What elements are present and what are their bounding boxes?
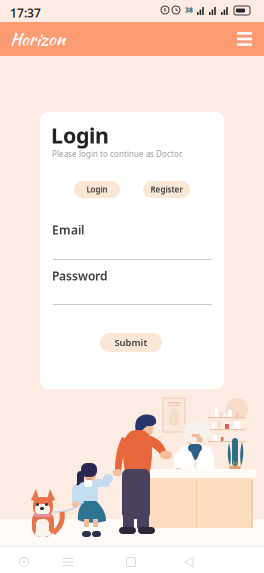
button[interactable]: Assistant: [10, 552, 38, 572]
staticText: 17:37: [10, 5, 41, 18]
staticText: Email: [52, 222, 84, 235]
staticText: Please login to continue as Doctor.: [52, 149, 183, 159]
button[interactable]: Recent apps: [54, 552, 82, 572]
staticText: Password: [52, 268, 108, 281]
button[interactable]: Menu: [229, 24, 260, 54]
button[interactable]: Submit: [100, 333, 162, 352]
button[interactable]: Register: [143, 181, 190, 198]
staticText: Login: [51, 121, 109, 149]
staticText: Submit: [114, 336, 147, 349]
button[interactable]: Home: [117, 552, 145, 572]
staticText: 38: [185, 6, 193, 14]
staticText: Login: [86, 184, 107, 195]
button[interactable]: Login: [74, 181, 120, 198]
staticText: Register: [150, 184, 182, 195]
button[interactable]: Back: [175, 552, 203, 572]
staticText: Horizon: [10, 26, 65, 52]
